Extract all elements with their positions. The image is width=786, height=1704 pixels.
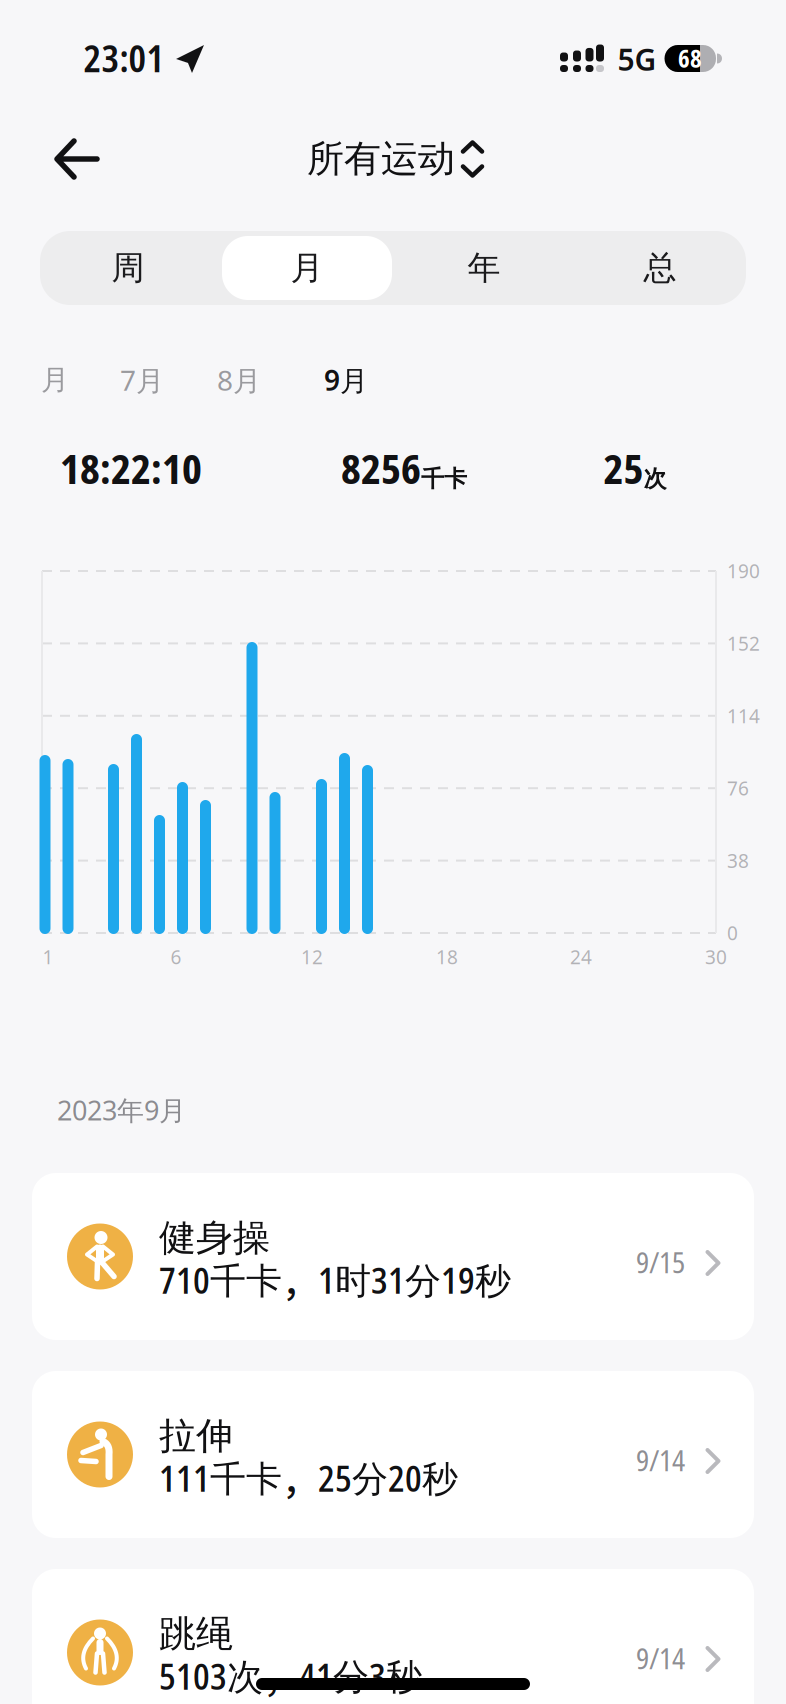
staticText: 7月 <box>120 361 164 399</box>
staticText: 24 <box>570 944 592 970</box>
staticText: 30 <box>705 944 727 970</box>
button[interactable]: 年 <box>399 233 569 303</box>
staticText: 周 <box>111 247 144 289</box>
button[interactable]: 拉伸 <box>32 1371 754 1538</box>
button[interactable]: 健身操 <box>32 1173 754 1340</box>
staticText: 总 <box>643 247 676 289</box>
button[interactable]: 7月 <box>120 361 164 399</box>
staticText: 23:01 <box>83 33 164 83</box>
staticText: 6 <box>170 944 181 970</box>
button[interactable]: 8月 <box>217 361 261 399</box>
staticText: 跳绳 <box>159 1611 233 1657</box>
staticText: 76 <box>727 775 749 801</box>
staticText: 18 <box>436 944 458 970</box>
staticText: 114 <box>727 703 760 729</box>
staticText: 190 <box>727 558 760 584</box>
staticText: 111千卡，25分20秒 <box>159 1454 458 1504</box>
staticText: 健身操 <box>159 1215 270 1261</box>
staticText: 拉伸 <box>159 1413 233 1459</box>
button[interactable] <box>222 236 392 300</box>
staticText: 月 <box>290 247 323 289</box>
staticText: 1 <box>42 944 53 970</box>
staticText: 710千卡，1时31分19秒 <box>159 1256 511 1306</box>
staticText: 9月 <box>324 361 368 399</box>
button[interactable]: 所有运动 <box>307 136 483 182</box>
staticText: 0 <box>727 920 738 946</box>
staticText: 9/15 <box>636 1242 685 1282</box>
button[interactable]: 月 <box>41 362 69 398</box>
staticText: 9/14 <box>636 1638 685 1678</box>
button[interactable]: 周 <box>43 233 213 303</box>
staticText: 38 <box>727 848 749 874</box>
staticText: 8256千卡 <box>341 441 467 495</box>
button[interactable]: 总 <box>575 233 745 303</box>
staticText: 5103次，41分3秒 <box>159 1652 422 1702</box>
staticText: 9/14 <box>636 1440 685 1480</box>
staticText: 年 <box>467 247 500 289</box>
button[interactable] <box>54 138 100 180</box>
button[interactable]: 9月 <box>324 361 368 399</box>
staticText: 12 <box>301 944 323 970</box>
staticText: 68 <box>678 42 702 75</box>
staticText: 8月 <box>217 361 261 399</box>
staticText: 18:22:10 <box>60 440 202 496</box>
staticText: 2023年9月 <box>57 1092 186 1128</box>
staticText: 月 <box>41 362 69 398</box>
button[interactable]: 跳绳 <box>32 1569 754 1704</box>
staticText: 5G <box>617 39 656 79</box>
staticText: 25次 <box>603 441 666 495</box>
staticText: 所有运动 <box>307 136 455 182</box>
staticText: 152 <box>727 630 760 656</box>
button[interactable]: 月 <box>222 233 392 303</box>
